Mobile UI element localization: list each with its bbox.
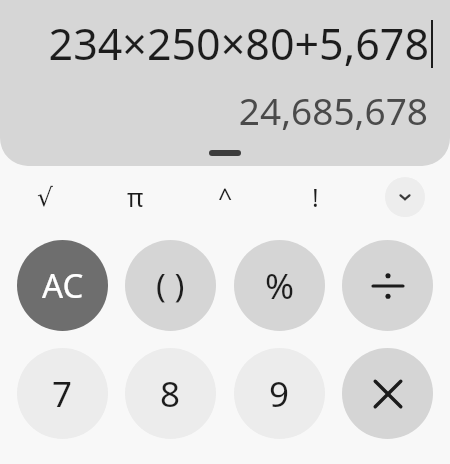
staticText: π — [127, 180, 144, 214]
button[interactable]: Collapse functions — [385, 177, 425, 217]
staticText: 9 — [269, 370, 290, 418]
staticText: AC — [42, 263, 84, 308]
staticText: ! — [312, 180, 319, 214]
staticText: 24,685,678 — [238, 85, 428, 135]
button[interactable]: AC — [17, 240, 108, 331]
staticText: ( ) — [156, 263, 185, 308]
staticText: ^ — [218, 180, 233, 214]
button[interactable]: 7 — [17, 348, 108, 439]
button[interactable]: ! — [270, 171, 360, 223]
button[interactable]: Expand history — [209, 150, 241, 156]
button[interactable]: Divide — [342, 240, 433, 331]
button[interactable]: π — [90, 171, 180, 223]
button[interactable]: Multiply — [342, 348, 433, 439]
button[interactable]: 8 — [125, 348, 216, 439]
button[interactable]: ( ) — [125, 240, 216, 331]
staticText: % — [265, 262, 295, 310]
staticText: √ — [37, 183, 53, 212]
staticText: 234×250×80+5,678 — [48, 14, 429, 73]
button[interactable]: √ — [0, 171, 90, 223]
staticText: 7 — [52, 370, 73, 418]
button[interactable]: ^ — [180, 171, 270, 223]
staticText: 8 — [160, 370, 181, 418]
button[interactable]: % — [234, 240, 325, 331]
button[interactable]: 9 — [234, 348, 325, 439]
